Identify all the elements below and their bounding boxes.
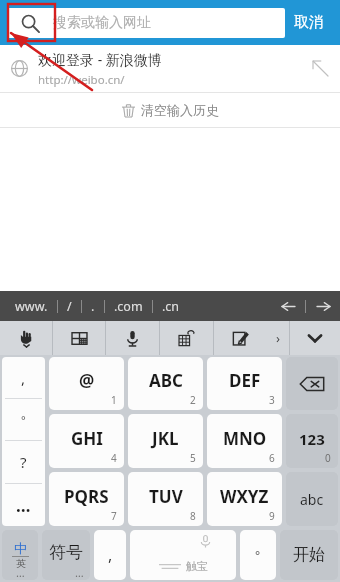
button[interactable]: abc — [286, 472, 338, 526]
staticText: GHI — [71, 427, 103, 450]
staticText: … — [75, 565, 84, 580]
button[interactable]: MNO — [207, 414, 282, 468]
staticText: 开始 — [293, 545, 325, 565]
staticText: 6 — [269, 451, 275, 465]
staticText: PQRS — [64, 485, 109, 508]
button[interactable]: GHI — [49, 414, 124, 468]
button[interactable]: @ — [49, 357, 124, 410]
staticText: ° — [21, 412, 26, 427]
staticText: … — [16, 565, 25, 580]
staticText: WXYZ — [220, 485, 269, 508]
staticText: ° — [255, 547, 261, 563]
other: Search — [7, 8, 53, 38]
staticText: 英 — [16, 557, 26, 570]
staticText: DEF — [229, 369, 261, 392]
button[interactable]: / — [58, 291, 81, 321]
button[interactable]: Switch keypad — [160, 321, 213, 355]
button[interactable]: PQRS — [49, 472, 124, 526]
button[interactable]: 123 — [286, 414, 338, 468]
button[interactable]: Write — [214, 321, 267, 355]
staticText: 7 — [111, 509, 117, 523]
button[interactable]: Next — [306, 291, 340, 321]
button[interactable]: ABC — [128, 357, 203, 410]
staticText: .cn — [162, 298, 180, 315]
staticText: TUV — [149, 485, 183, 508]
button[interactable]: Search — [7, 8, 285, 38]
button[interactable]: ? — [2, 441, 45, 483]
staticText: www. — [15, 298, 48, 315]
button[interactable]: 开始 — [280, 530, 338, 580]
button[interactable]: , — [2, 357, 45, 398]
button[interactable]: . — [82, 291, 104, 321]
button[interactable]: … — [2, 484, 45, 526]
staticText: , — [108, 544, 113, 566]
button[interactable]: , — [94, 530, 126, 580]
button[interactable]: Voice input — [106, 321, 159, 355]
staticText: 3 — [269, 393, 275, 407]
staticText: 触宝 — [186, 559, 208, 573]
staticText: 9 — [269, 509, 275, 523]
button[interactable]: Space — [130, 530, 236, 580]
button[interactable]: .com — [105, 291, 152, 321]
staticText: … — [16, 494, 31, 517]
staticText: , — [21, 368, 26, 388]
button[interactable]: JKL — [128, 414, 203, 468]
button[interactable]: 中 — [2, 530, 38, 580]
staticText: 中 — [14, 540, 27, 556]
button[interactable]: Keyboard layout — [53, 321, 105, 355]
staticText: 2 — [190, 393, 196, 407]
button[interactable]: 取消 — [285, 0, 333, 45]
button[interactable]: Handwriting mode — [0, 321, 52, 355]
button[interactable]: .cn — [153, 291, 189, 321]
staticText: › — [276, 329, 281, 347]
staticText: 取消 — [294, 13, 324, 32]
button[interactable]: DEF — [207, 357, 282, 410]
staticText: . — [91, 298, 95, 315]
button[interactable]: 符号 — [42, 530, 90, 580]
button[interactable]: Hide keyboard — [290, 321, 340, 355]
button[interactable]: Previous — [271, 291, 305, 321]
staticText: 0 — [325, 451, 331, 465]
staticText: http://weibo.cn/ — [38, 72, 125, 88]
staticText: ABC — [149, 369, 183, 392]
staticText: 8 — [190, 509, 196, 523]
staticText: JKL — [152, 427, 179, 450]
button[interactable]: Use this query — [300, 45, 340, 92]
staticText: / — [67, 298, 72, 315]
staticText: 4 — [111, 451, 117, 465]
staticText: .com — [114, 298, 143, 315]
staticText: abc — [300, 490, 324, 509]
staticText: @ — [79, 369, 95, 392]
staticText: 搜索或输入网址 — [53, 14, 151, 32]
staticText: 清空输入历史 — [141, 102, 219, 118]
button[interactable]: WXYZ — [207, 472, 282, 526]
staticText: MNO — [223, 427, 267, 450]
button[interactable]: 欢迎登录 - 新浪微博 — [0, 45, 340, 92]
staticText: 1 — [111, 393, 117, 407]
staticText: ? — [20, 452, 27, 472]
button[interactable]: ° — [240, 530, 276, 580]
button[interactable]: www. — [6, 291, 57, 321]
staticText: 123 — [299, 429, 325, 449]
button[interactable]: 清空输入历史 — [0, 93, 340, 127]
button[interactable]: ° — [2, 399, 45, 440]
staticText: 欢迎登录 - 新浪微博 — [38, 50, 162, 69]
button[interactable]: TUV — [128, 472, 203, 526]
button[interactable]: Backspace — [286, 357, 338, 410]
button[interactable]: More options — [267, 321, 289, 355]
staticText: 符号 — [49, 542, 83, 563]
staticText: 5 — [190, 451, 196, 465]
